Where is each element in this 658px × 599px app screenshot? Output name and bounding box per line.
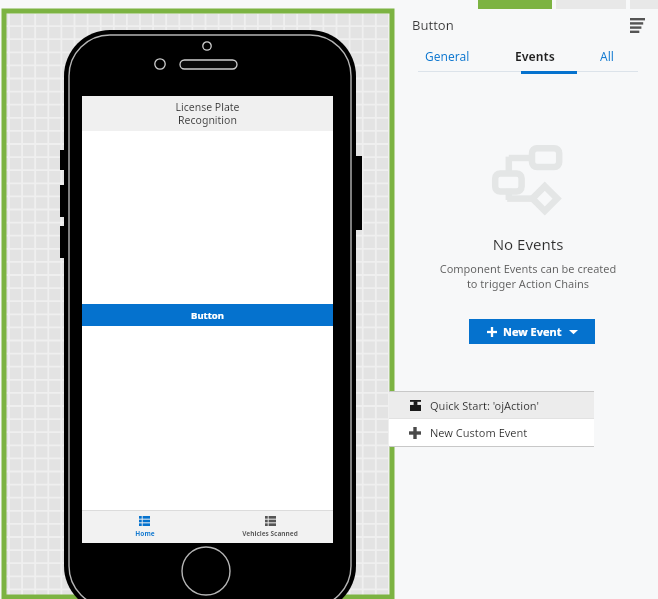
button[interactable]: Menu options (626, 14, 648, 36)
staticText: Home (135, 529, 155, 538)
staticText: New Custom Event (430, 425, 528, 440)
button[interactable]: General (425, 41, 470, 71)
button[interactable]: New Custom Event (389, 419, 594, 446)
button[interactable]: Button (82, 304, 333, 326)
button[interactable]: Home (82, 511, 207, 543)
staticText: License Plate Recognition (82, 100, 333, 127)
staticText: New Event (503, 324, 562, 339)
staticText: No Events (398, 234, 658, 254)
button[interactable]: New Event (469, 319, 595, 344)
button[interactable]: All (600, 41, 614, 71)
staticText: General (425, 48, 470, 64)
staticText: All (600, 48, 614, 64)
staticText: Button (82, 309, 333, 322)
button[interactable]: Events (515, 41, 555, 71)
staticText: Button (412, 16, 454, 34)
staticText: Component Events can be created to trigg… (406, 261, 650, 291)
staticText: Vehicles Scanned (242, 529, 298, 538)
staticText: Events (515, 48, 555, 64)
button[interactable]: Vehicles Scanned (207, 511, 333, 543)
button[interactable]: Quick Start: 'ojAction' (389, 392, 594, 418)
staticText: Quick Start: 'ojAction' (430, 398, 539, 413)
